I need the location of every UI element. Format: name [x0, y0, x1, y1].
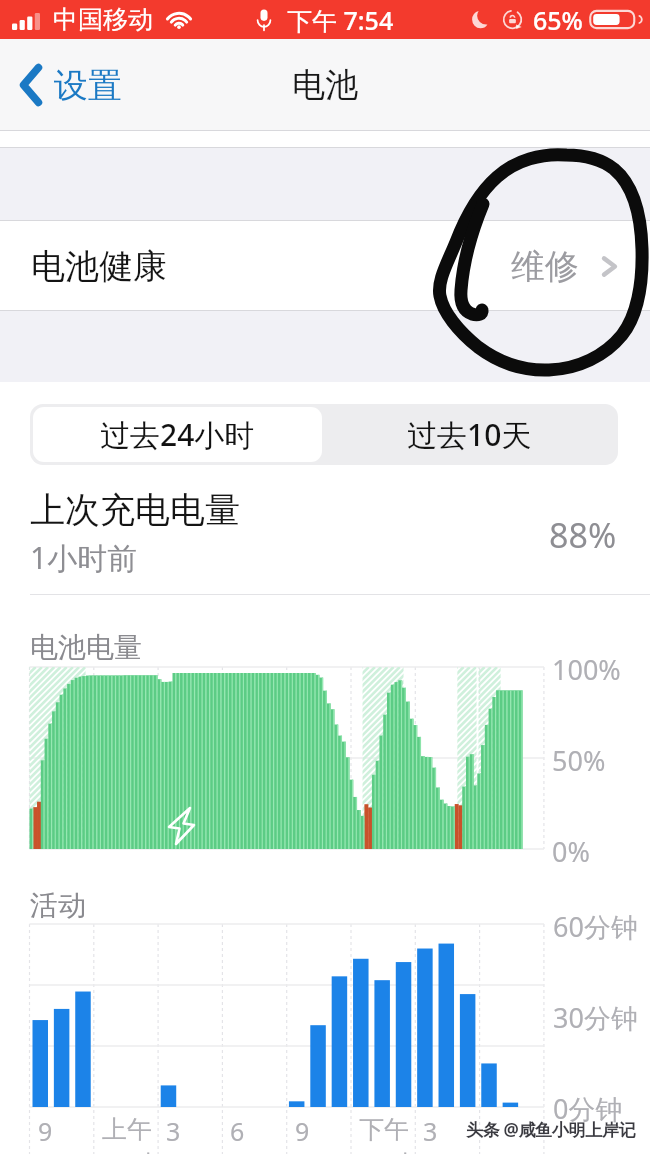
- staticText: 12时: [100, 1146, 154, 1154]
- staticText: 活动: [30, 888, 86, 923]
- staticText: 88%: [549, 512, 617, 558]
- staticText: 1小时前: [30, 537, 138, 578]
- staticText: 3: [423, 1114, 438, 1148]
- button[interactable]: 电池健康: [0, 221, 650, 310]
- staticText: 0分钟: [553, 1090, 623, 1127]
- staticText: 过去10天: [407, 414, 532, 455]
- button[interactable]: 过去24小时: [33, 407, 322, 462]
- staticText: 上次充电电量: [30, 488, 240, 532]
- staticText: 9: [295, 1114, 310, 1148]
- staticText: 维修: [511, 245, 579, 288]
- staticText: 下午: [359, 1114, 409, 1145]
- staticText: 上午: [102, 1114, 152, 1145]
- staticText: 电池: [292, 64, 358, 106]
- staticText: 头条 @咸鱼小明上岸记: [466, 1118, 636, 1141]
- staticText: 电池健康: [31, 245, 167, 288]
- staticText: 100%: [552, 651, 621, 688]
- staticText: 50%: [552, 742, 606, 779]
- staticText: 过去24小时: [100, 414, 255, 455]
- staticText: 设置: [54, 64, 122, 107]
- staticText: 6: [230, 1114, 245, 1148]
- staticText: 中国移动: [53, 4, 153, 35]
- button[interactable]: 设置: [17, 54, 122, 116]
- staticText: 30分钟: [553, 999, 638, 1036]
- staticText: 下午 7:54: [287, 3, 394, 37]
- staticText: 9: [38, 1114, 53, 1148]
- button[interactable]: 过去10天: [324, 407, 615, 462]
- staticText: 60分钟: [553, 908, 638, 945]
- staticText: 0%: [552, 833, 590, 870]
- staticText: 电池电量: [30, 630, 142, 665]
- staticText: 3: [166, 1114, 181, 1148]
- staticText: 65%: [533, 3, 583, 37]
- staticText: 12时: [357, 1146, 411, 1154]
